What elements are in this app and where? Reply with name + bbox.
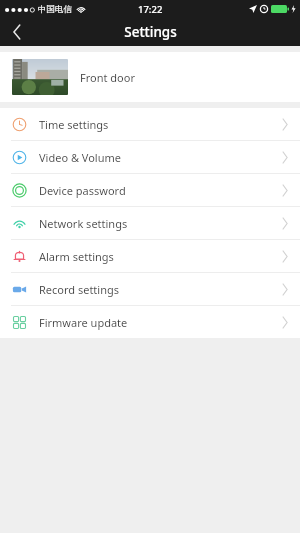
staticText: 17:22 bbox=[138, 3, 163, 16]
staticText: Network settings bbox=[39, 216, 128, 231]
button[interactable]: Video & Volume bbox=[0, 141, 300, 173]
button[interactable]: Device password bbox=[0, 174, 300, 206]
staticText: Alarm settings bbox=[39, 249, 114, 264]
button[interactable]: Time settings bbox=[0, 108, 300, 140]
staticText: 中国电信 bbox=[38, 4, 72, 15]
staticText: Settings bbox=[124, 23, 177, 41]
button[interactable]: Alarm settings bbox=[0, 240, 300, 272]
button[interactable]: Firmware update bbox=[0, 306, 300, 338]
staticText: Front door bbox=[80, 70, 135, 85]
staticText: Record settings bbox=[39, 282, 120, 297]
button[interactable]: Back bbox=[0, 18, 34, 46]
button[interactable]: Front door bbox=[0, 52, 300, 102]
staticText: Video & Volume bbox=[39, 150, 121, 165]
button[interactable]: Network settings bbox=[0, 207, 300, 239]
staticText: Time settings bbox=[39, 117, 109, 132]
staticText: Firmware update bbox=[39, 315, 128, 330]
staticText: Device password bbox=[39, 183, 126, 198]
button[interactable]: Record settings bbox=[0, 273, 300, 305]
